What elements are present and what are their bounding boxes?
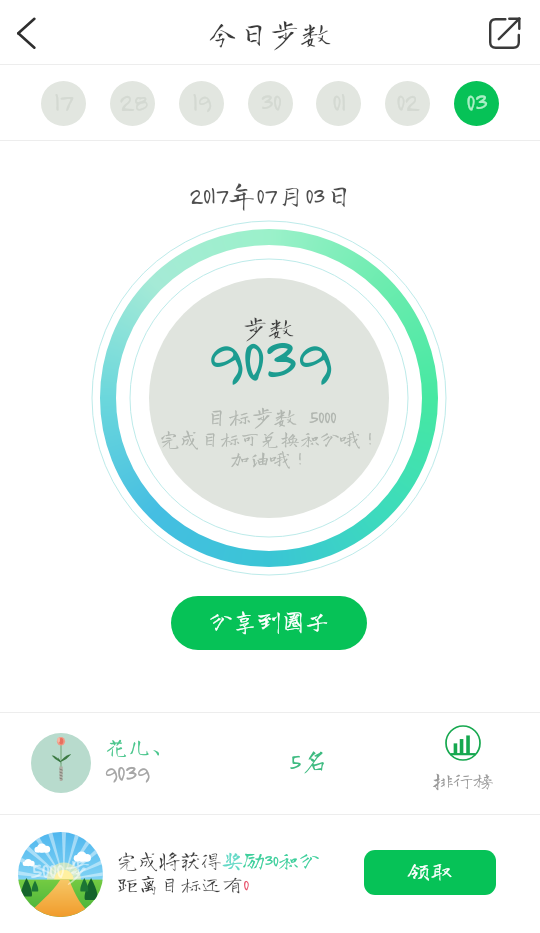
staticText: 5名 — [289, 746, 329, 774]
staticText: 02 — [396, 86, 419, 117]
staticText: 19 — [192, 86, 211, 117]
button[interactable]: Share — [487, 16, 521, 50]
staticText: 2017年07月03日 — [189, 180, 354, 209]
button[interactable]: Back — [0, 5, 56, 61]
staticText: 加油哦！ — [230, 448, 310, 468]
button[interactable]: 分享到圈子 — [171, 596, 367, 650]
staticText: 排行榜 — [433, 770, 493, 790]
staticText: 分享到圈子 — [209, 609, 329, 633]
button[interactable]: 01 — [316, 81, 361, 126]
staticText: 步数 — [242, 314, 295, 340]
button[interactable]: 02 — [385, 81, 430, 126]
button[interactable]: 19 — [179, 81, 224, 126]
staticText: 03 — [466, 86, 487, 117]
button[interactable]: 17 — [41, 81, 86, 126]
staticText: 5000步 — [30, 855, 92, 883]
staticText: 9039 — [206, 317, 330, 397]
staticText: 17 — [54, 86, 73, 117]
button[interactable]: 30 — [248, 81, 293, 126]
staticText: 9039 — [104, 757, 149, 786]
button[interactable]: 28 — [110, 81, 155, 126]
staticText: 完成目标可兑换积分哦！ — [160, 428, 380, 448]
staticText: 花儿、 — [105, 735, 174, 758]
button[interactable]: 排行榜 — [431, 725, 495, 790]
staticText: 01 — [332, 86, 346, 117]
staticText: 30 — [260, 86, 281, 117]
staticText: 距离目标还有0 — [117, 874, 249, 895]
staticText: 目标步数 5000 — [205, 405, 336, 428]
staticText: 完成将获得奖励30积分 — [117, 850, 321, 871]
button[interactable]: 03 — [454, 81, 499, 126]
staticText: 28 — [119, 86, 147, 117]
staticText: 领取 — [407, 859, 453, 882]
button[interactable]: 领取 — [364, 850, 496, 895]
staticText: 今日步数 — [207, 18, 331, 49]
